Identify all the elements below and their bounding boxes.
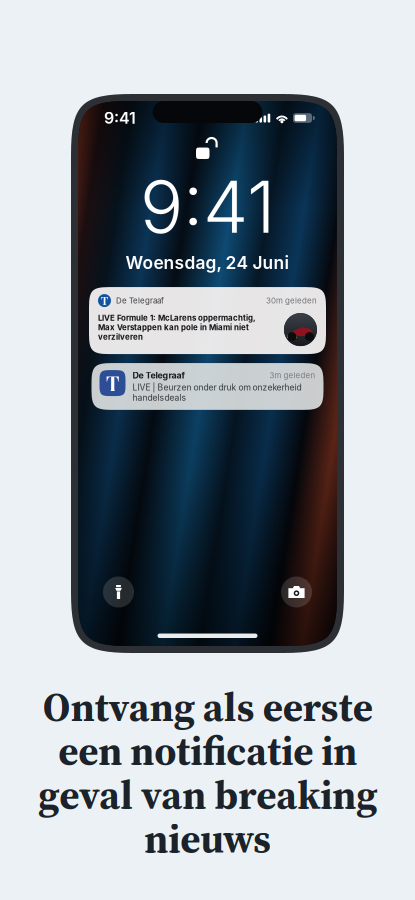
staticText: Ontvang als eerste een notificatie in ge…	[38, 685, 377, 860]
staticText: 9:41	[104, 108, 136, 128]
button[interactable]: T	[89, 287, 326, 354]
staticText: 9:41	[140, 163, 275, 250]
staticText: LIVE Formule 1: McLarens oppermachtig, M…	[98, 313, 255, 342]
staticText: 3m geleden	[269, 371, 315, 380]
button[interactable]: T	[91, 363, 323, 410]
staticText: T	[101, 293, 108, 308]
staticText: T	[106, 370, 119, 396]
staticText: Woensdag, 24 Juni	[125, 252, 289, 273]
staticText: De Telegraaf	[116, 296, 164, 305]
staticText: De Telegraaf	[132, 370, 185, 381]
staticText: LIVE | Beurzen onder druk om onzekerheid…	[132, 382, 301, 403]
button[interactable]: Camera	[281, 576, 312, 607]
staticText: 30m geleden	[266, 296, 317, 305]
button[interactable]: Zaklamp	[103, 576, 134, 607]
